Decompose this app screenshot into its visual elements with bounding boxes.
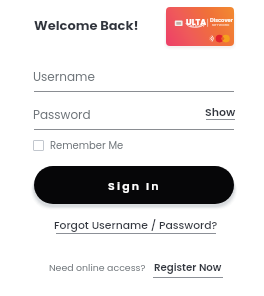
button[interactable]: Show (205, 104, 236, 120)
staticText: Need online access? (49, 261, 146, 274)
staticText: Forgot Username / Password? (54, 218, 218, 233)
staticText: BEAUTY (190, 24, 205, 28)
staticText: Username (33, 68, 95, 85)
button[interactable]: Forgot Username / Password? (54, 218, 218, 234)
staticText: Discover (210, 17, 233, 24)
staticText: Remember Me (50, 138, 124, 152)
staticText: Sign In (108, 178, 161, 193)
staticText: Password (33, 106, 91, 123)
staticText: NETWORK (212, 23, 230, 27)
button[interactable]: Register Now (153, 260, 223, 278)
staticText: Show (205, 104, 236, 119)
staticText: Register Now (154, 260, 222, 274)
staticText: ULTA (186, 17, 207, 28)
button[interactable]: Sign In (34, 166, 234, 204)
staticText: Welcome Back! (34, 16, 139, 34)
button[interactable]: Remember Me (33, 138, 124, 152)
